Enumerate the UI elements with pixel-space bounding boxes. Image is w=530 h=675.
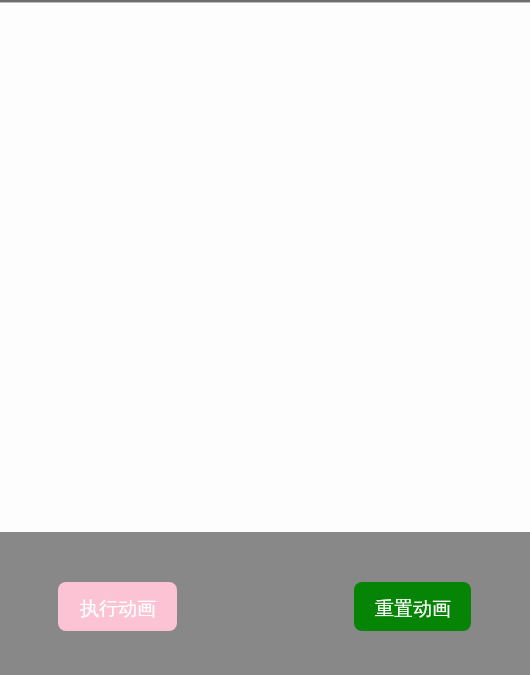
button[interactable]: 执行动画 (58, 582, 177, 631)
staticText: 重置动画 (375, 597, 451, 621)
button[interactable]: 重置动画 (354, 582, 471, 631)
staticText: 执行动画 (80, 597, 156, 621)
